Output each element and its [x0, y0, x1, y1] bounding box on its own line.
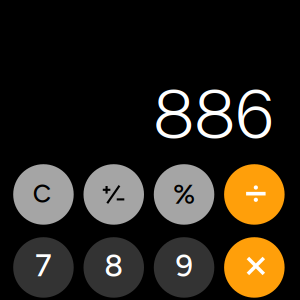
staticText: %: [173, 177, 195, 211]
button[interactable]: 8: [83, 237, 144, 298]
staticText: C: [33, 178, 51, 209]
button[interactable]: 7: [13, 237, 74, 298]
button[interactable]: Divide: [224, 164, 285, 225]
button[interactable]: 9: [154, 237, 214, 298]
staticText: 886: [153, 76, 274, 153]
button[interactable]: %: [154, 164, 214, 225]
staticText: 8: [104, 247, 123, 284]
staticText: 9: [176, 247, 193, 284]
button[interactable]: Plus minus: [83, 164, 144, 225]
button[interactable]: C: [13, 164, 74, 225]
staticText: 7: [35, 247, 52, 284]
button[interactable]: Multiply: [224, 237, 285, 298]
